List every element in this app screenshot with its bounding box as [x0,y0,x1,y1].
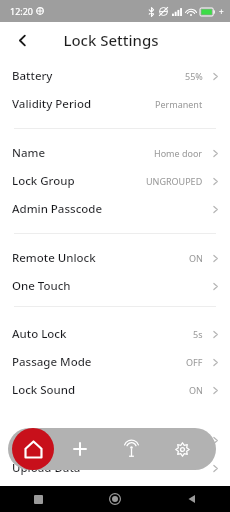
staticText: Passage Mode [12,354,92,370]
button[interactable]: Back [153,486,230,512]
staticText: OFF [186,356,203,368]
button[interactable]: Lock Group [0,167,230,195]
button[interactable]: Lock Clock [0,426,230,454]
button[interactable]: Home [76,486,153,512]
button[interactable]: Passage Mode [0,348,230,376]
staticText: Home door [154,147,203,159]
staticText: + [219,6,224,17]
staticText: Battery [12,68,53,84]
staticText: UNGROUPED [146,175,203,187]
button[interactable]: Upload Data [0,454,230,482]
button[interactable]: Broadcast [106,428,157,470]
button[interactable]: Auto Lock [0,320,230,348]
staticText: Permanent [155,98,203,110]
button[interactable]: Recents [0,486,76,512]
button[interactable]: One Touch [0,272,230,300]
staticText: 12:20 [10,5,34,17]
staticText: 5s [193,328,203,340]
button[interactable]: Add [54,428,106,470]
button[interactable]: Remote Unlock [0,244,230,272]
staticText: Lock Sound [12,382,76,398]
button[interactable]: Battery [0,62,230,90]
staticText: 55% [185,70,203,82]
staticText: Upload Data [12,460,81,476]
button[interactable]: Validity Period [0,90,230,118]
button[interactable]: Lock Sound [0,376,230,404]
staticText: ON [189,252,203,264]
button[interactable]: Home [12,428,54,470]
button[interactable]: Admin Passcode [0,195,230,223]
button[interactable]: Name [0,139,230,167]
staticText: Auto Lock [12,326,67,342]
staticText: Validity Period [12,96,92,112]
staticText: ON [189,384,203,396]
staticText: Admin Passcode [12,201,103,217]
button[interactable]: Back [8,26,36,54]
staticText: Lock Clock [12,432,70,448]
staticText: Name [12,145,45,161]
staticText: Remote Unlock [12,250,96,266]
staticText: Lock Settings [63,30,159,50]
button[interactable]: Settings [157,428,208,470]
staticText: Lock Group [12,173,75,189]
staticText: One Touch [12,278,71,294]
